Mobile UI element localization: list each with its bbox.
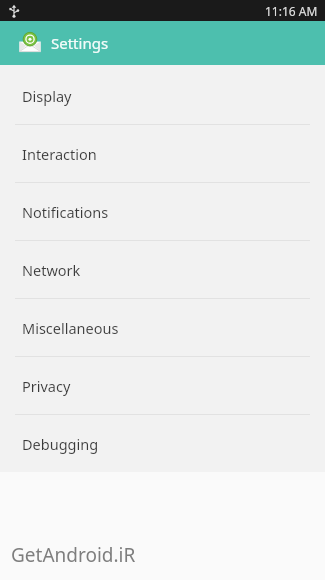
button[interactable]: Debugging [0, 415, 325, 472]
staticText: GetAndroid.iR [11, 542, 136, 568]
staticText: Display [22, 86, 72, 106]
button[interactable]: Network [0, 241, 325, 299]
staticText: Notifications [22, 202, 109, 222]
button[interactable]: Notifications [0, 183, 325, 241]
staticText: Settings [51, 33, 109, 53]
staticText: 11:16 AM [265, 3, 318, 19]
button[interactable]: Privacy [0, 357, 325, 415]
staticText: Network [22, 260, 81, 280]
button[interactable]: Miscellaneous [0, 299, 325, 357]
button[interactable]: Interaction [0, 125, 325, 183]
staticText: Miscellaneous [22, 318, 119, 338]
button[interactable]: Settings [0, 21, 325, 65]
staticText: Debugging [22, 434, 99, 454]
staticText: Interaction [22, 144, 97, 164]
other: USB connected [7, 4, 21, 18]
staticText: Privacy [22, 376, 71, 396]
button[interactable]: Display [0, 67, 325, 125]
